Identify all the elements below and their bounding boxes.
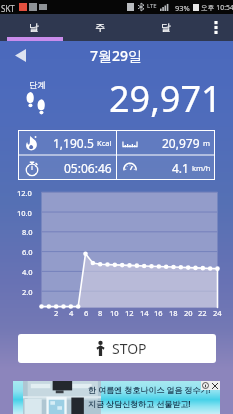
staticText: 4.1 bbox=[172, 160, 189, 176]
staticText: 4.0 bbox=[22, 267, 33, 277]
button[interactable]: 4.1 bbox=[116, 155, 215, 180]
button[interactable]: 한 여름엔 청호나이스 얼음 정수기! bbox=[13, 381, 220, 414]
staticText: 12.0 bbox=[17, 188, 32, 198]
staticText: km/h bbox=[192, 163, 211, 173]
staticText: 4 bbox=[69, 308, 74, 318]
staticText: 22 bbox=[198, 308, 207, 318]
staticText: STOP bbox=[112, 339, 147, 358]
button[interactable]: 날 bbox=[0, 14, 67, 41]
staticText: 29,971 bbox=[109, 74, 222, 123]
staticText: 한 여름엔 청호나이스 얼음 정수기! bbox=[88, 384, 211, 395]
staticText: 주 bbox=[95, 21, 105, 34]
staticText: 05:06:46 bbox=[64, 160, 112, 176]
staticText: 20,979 bbox=[162, 135, 200, 151]
staticText: 2.0 bbox=[22, 287, 33, 297]
staticText: LTE bbox=[147, 2, 157, 10]
button[interactable]: 주 bbox=[67, 14, 133, 41]
staticText: Kcal bbox=[97, 138, 112, 148]
staticText: 8 bbox=[98, 308, 103, 318]
staticText: 7월29일 bbox=[90, 46, 143, 65]
staticText: 18 bbox=[169, 308, 178, 318]
staticText: 8.0 bbox=[22, 227, 33, 237]
button[interactable]: More options bbox=[199, 14, 233, 41]
staticText: 93% bbox=[175, 3, 190, 13]
staticText: 6.0 bbox=[22, 247, 33, 257]
staticText: 20 bbox=[184, 308, 193, 318]
staticText: 10 bbox=[110, 308, 119, 318]
staticText: 14 bbox=[140, 308, 149, 318]
staticText: 2 bbox=[54, 308, 59, 318]
button[interactable]: Previous day bbox=[10, 45, 30, 65]
staticText: 달 bbox=[161, 21, 171, 34]
staticText: 오후 10:54 bbox=[201, 3, 233, 12]
staticText: 16 bbox=[154, 308, 163, 318]
button[interactable]: STOP bbox=[18, 334, 216, 363]
staticText: 24 bbox=[213, 308, 222, 318]
staticText: m bbox=[203, 138, 211, 148]
staticText: 지금 상담신청하고 선물받고! bbox=[88, 398, 191, 409]
staticText: SKT bbox=[1, 3, 15, 14]
staticText: 날 bbox=[29, 21, 39, 34]
button[interactable]: 1,190.5 bbox=[18, 130, 116, 155]
button[interactable]: Close ad bbox=[210, 381, 220, 390]
staticText: 6 bbox=[84, 308, 89, 318]
staticText: 1,190.5 bbox=[53, 135, 94, 151]
staticText: 단계 bbox=[29, 80, 46, 91]
staticText: 12 bbox=[125, 308, 134, 318]
button[interactable]: 20,979 bbox=[116, 130, 215, 155]
button[interactable]: 05:06:46 bbox=[18, 155, 116, 180]
button[interactable]: 달 bbox=[133, 14, 199, 41]
button[interactable]: Ad info bbox=[201, 381, 210, 390]
staticText: 10.0 bbox=[17, 208, 32, 218]
